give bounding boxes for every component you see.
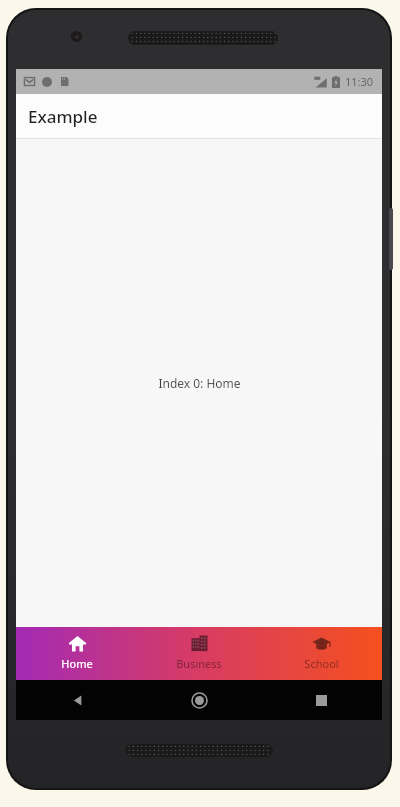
- staticText: School: [304, 656, 339, 671]
- button[interactable]: Back: [16, 680, 138, 720]
- staticText: Example: [28, 105, 98, 128]
- staticText: Business: [176, 656, 222, 671]
- button[interactable]: Home: [16, 627, 138, 680]
- button[interactable]: School: [260, 627, 382, 680]
- button[interactable]: Business: [138, 627, 260, 680]
- staticText: Index 0: Home: [158, 375, 241, 391]
- staticText: 11:30: [345, 74, 374, 89]
- button[interactable]: Home: [138, 680, 260, 720]
- button[interactable]: Recent apps: [260, 680, 382, 720]
- staticText: Home: [61, 656, 93, 671]
